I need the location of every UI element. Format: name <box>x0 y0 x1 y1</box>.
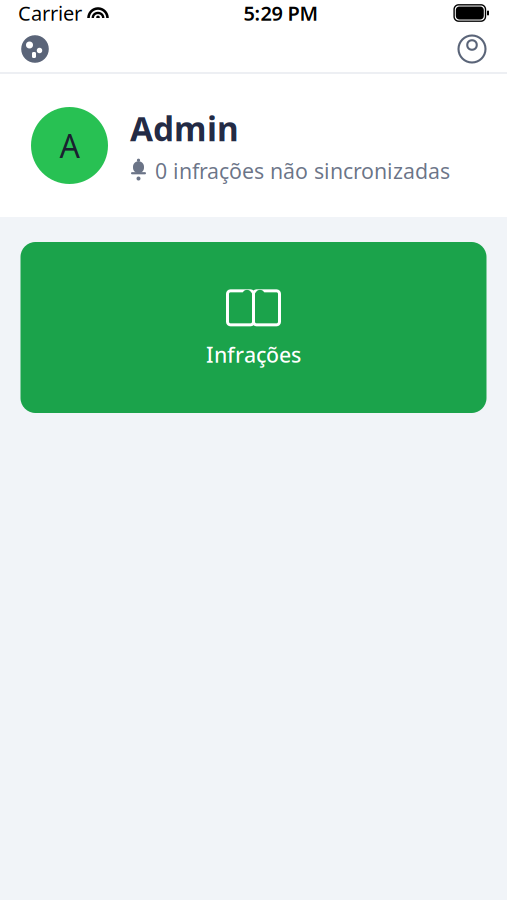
button[interactable]: Infrações <box>20 242 486 413</box>
staticText: Carrier <box>18 0 82 26</box>
staticText: A <box>59 124 79 167</box>
button[interactable]: Profile <box>451 30 493 68</box>
staticText: 5:29 PM <box>244 0 319 26</box>
button[interactable]: Language <box>14 30 56 68</box>
staticText: 0 infrações não sincronizadas <box>155 156 450 185</box>
staticText: Infrações <box>206 340 301 369</box>
staticText: Admin <box>130 106 239 150</box>
